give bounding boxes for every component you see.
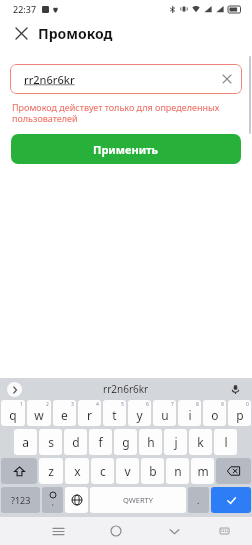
staticText: z — [48, 463, 54, 479]
button[interactable]: j — [164, 429, 187, 455]
staticText: 6 — [146, 401, 149, 408]
button[interactable]: a — [14, 429, 37, 455]
button[interactable]: l — [214, 429, 237, 455]
staticText: f — [98, 434, 103, 450]
staticText: . — [197, 494, 200, 506]
button[interactable]: 8 — [178, 400, 201, 426]
staticText: y — [136, 407, 143, 423]
staticText: e — [61, 407, 68, 423]
staticText: k — [197, 434, 204, 450]
button[interactable]: 4 — [78, 400, 101, 426]
button[interactable]: n — [166, 458, 189, 484]
staticText: 0 — [246, 401, 249, 408]
button[interactable]: z — [39, 458, 63, 484]
button[interactable]: Home — [105, 520, 127, 542]
staticText: Промокод действует только для определенн… — [12, 101, 240, 125]
staticText: 7 — [171, 401, 174, 408]
button[interactable]: Shift — [1, 458, 37, 484]
staticText: s — [48, 434, 54, 450]
staticText: 5 — [121, 401, 124, 408]
button[interactable]: Space — [90, 487, 186, 513]
button[interactable]: Recents — [47, 520, 69, 542]
button[interactable]: 2 — [27, 400, 51, 426]
button[interactable]: Backspace — [216, 458, 251, 484]
button[interactable]: b — [141, 458, 164, 484]
button[interactable]: Clear text — [218, 70, 236, 88]
button[interactable]: 6 — [128, 400, 151, 426]
button[interactable]: Change language — [65, 487, 88, 513]
staticText: a — [22, 434, 29, 450]
staticText: h — [147, 434, 155, 450]
staticText: 9 — [221, 401, 224, 408]
staticText: r — [87, 407, 92, 423]
staticText: 3 — [71, 401, 74, 408]
staticText: 1 — [20, 401, 23, 408]
staticText: rr2n6r6kr — [24, 72, 75, 87]
button[interactable]: c — [91, 458, 114, 484]
button[interactable]: Hide keyboard — [163, 520, 185, 542]
button[interactable]: 1 — [1, 400, 25, 426]
staticText: 4 — [96, 401, 99, 408]
button[interactable]: f — [89, 429, 112, 455]
staticText: b — [149, 463, 157, 479]
button[interactable]: rr2n6r6kr — [10, 64, 242, 94]
staticText: ?123 — [11, 494, 31, 506]
staticText: Применить — [93, 142, 159, 157]
button[interactable]: Enter — [211, 487, 251, 513]
button[interactable]: x — [65, 458, 89, 484]
button[interactable]: d — [64, 429, 87, 455]
button[interactable]: 7 — [153, 400, 176, 426]
staticText: , — [52, 498, 54, 508]
staticText: c — [100, 463, 106, 479]
button[interactable]: Switch keyboard — [214, 521, 234, 541]
staticText: 2 — [46, 401, 49, 408]
staticText: j — [174, 434, 178, 450]
button[interactable]: More suggestions — [7, 382, 22, 397]
staticText: d — [72, 434, 80, 450]
button[interactable]: m — [191, 458, 214, 484]
button[interactable]: Close — [8, 20, 34, 46]
staticText: rr2n6r6kr — [103, 382, 149, 396]
button[interactable]: k — [189, 429, 212, 455]
staticText: p — [236, 407, 244, 423]
staticText: 8 — [196, 401, 199, 408]
button[interactable]: h — [139, 429, 162, 455]
button[interactable]: 0 — [228, 400, 251, 426]
staticText: m — [197, 463, 209, 479]
staticText: 22:37 — [13, 3, 37, 15]
button[interactable]: ?123 — [1, 487, 40, 513]
button[interactable]: s — [39, 429, 62, 455]
staticText: i — [188, 407, 192, 423]
staticText: w — [34, 407, 44, 423]
staticText: t — [112, 407, 117, 423]
staticText: Промокод — [38, 24, 113, 43]
button[interactable]: g — [114, 429, 137, 455]
button[interactable]: v — [116, 458, 139, 484]
staticText: x — [74, 463, 81, 479]
button[interactable]: Period — [188, 487, 209, 513]
staticText: g — [122, 434, 130, 450]
staticText: q — [9, 407, 17, 423]
staticText: v — [124, 463, 131, 479]
staticText: n — [174, 463, 182, 479]
button[interactable]: Voice input — [227, 381, 243, 397]
staticText: u — [161, 407, 169, 423]
button[interactable]: Emoji and comma — [42, 487, 63, 513]
staticText: o — [211, 407, 219, 423]
button[interactable]: Применить — [11, 134, 241, 164]
button[interactable]: 3 — [53, 400, 76, 426]
button[interactable]: 9 — [203, 400, 226, 426]
staticText: l — [224, 434, 228, 450]
button[interactable]: 5 — [103, 400, 126, 426]
staticText: QWERTY — [123, 495, 154, 505]
